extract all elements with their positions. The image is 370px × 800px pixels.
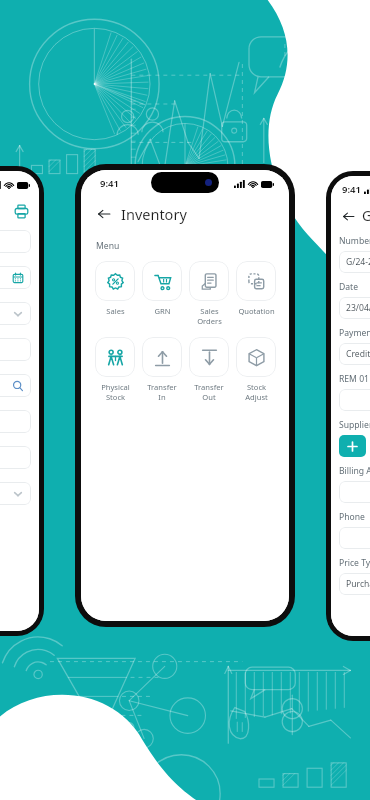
staticText: Physical Stock [101, 382, 130, 402]
staticText: Supplier [339, 419, 370, 431]
staticText: G/24-2 [346, 256, 370, 268]
staticText: Purcha [346, 578, 370, 590]
button[interactable]: Sales [95, 261, 135, 316]
staticText: Transfer Out [194, 382, 224, 402]
staticText: Phone [339, 511, 365, 523]
button[interactable]: Add supplier [339, 435, 366, 457]
staticText: 9:41 [342, 183, 361, 196]
button[interactable]: Print [11, 201, 31, 221]
button[interactable]: Transfer In [142, 337, 182, 402]
staticText: 9:41 [100, 177, 119, 190]
staticText: Quotation [238, 306, 275, 316]
button[interactable]: Sales Orders [189, 261, 229, 326]
staticText: GRN [362, 206, 370, 225]
staticText: REM 01 [339, 373, 369, 385]
staticText: Stock Adjust [245, 382, 268, 402]
staticText: Menu [96, 240, 120, 252]
button[interactable]: Quotation [236, 261, 276, 316]
staticText: Transfer In [147, 382, 177, 402]
staticText: Payment [339, 327, 370, 339]
staticText: Sales [106, 306, 125, 316]
staticText: Credit [346, 348, 370, 360]
staticText: Number [339, 235, 370, 247]
staticText: Inventory [121, 204, 187, 224]
button[interactable]: Transfer Out [189, 337, 229, 402]
button[interactable]: Stock Adjust [236, 337, 276, 402]
button[interactable]: GRN [142, 261, 182, 316]
button[interactable]: Physical Stock [95, 337, 135, 402]
button[interactable]: Back [94, 204, 114, 224]
staticText: 23/04/ [346, 302, 370, 314]
button[interactable]: Back [339, 207, 357, 225]
staticText: Sales Orders [197, 306, 222, 326]
staticText: Date [339, 281, 359, 293]
staticText: Price Typ [339, 557, 370, 569]
staticText: GRN [154, 306, 171, 316]
staticText: Billing Ac [339, 465, 370, 477]
